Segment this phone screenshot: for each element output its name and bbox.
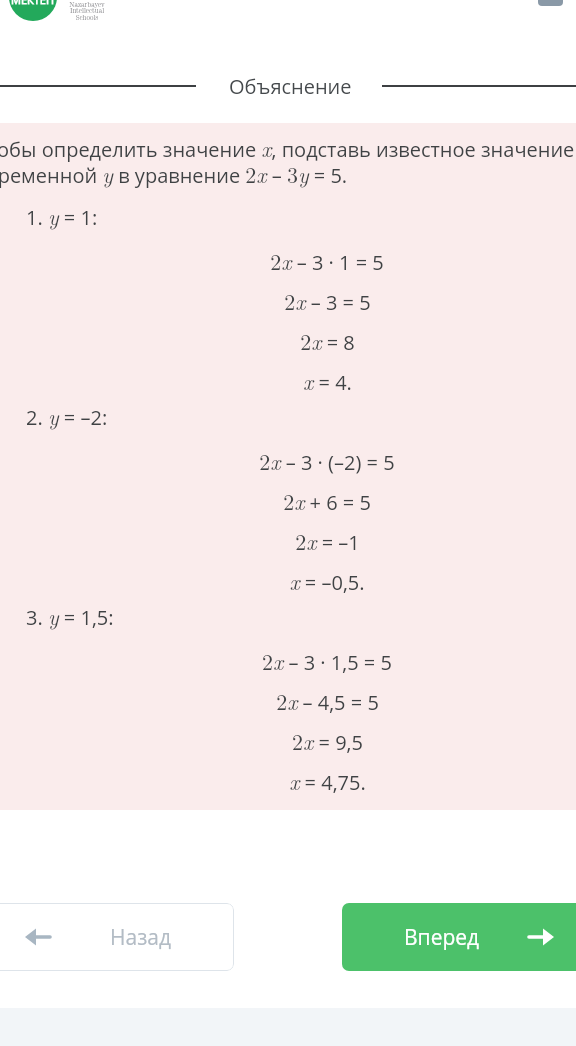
- staticText: 2x – 3 = 5: [284, 285, 371, 316]
- staticText: x = 4.: [303, 365, 352, 396]
- staticText: 2x + 6 = 5: [283, 485, 371, 516]
- staticText: Объяснение: [229, 73, 352, 100]
- staticText: 2x = –1: [295, 525, 360, 556]
- staticText: 2. y = –2:: [26, 400, 108, 431]
- staticText: 2x = 9,5: [292, 725, 363, 756]
- staticText: Чтобы определить значение x, подставь из…: [0, 132, 576, 189]
- staticText: x = –0,5.: [289, 565, 365, 596]
- staticText: 2x = 8: [300, 325, 355, 356]
- staticText: Назад: [110, 923, 172, 952]
- staticText: 2x – 3 · (–2) = 5: [259, 445, 395, 476]
- button[interactable]: Назад: [0, 903, 234, 971]
- staticText: 2x – 3 · 1 = 5: [270, 245, 384, 276]
- button[interactable]: Mektep logo: [9, 0, 57, 21]
- staticText: 1. y = 1:: [26, 200, 98, 231]
- button[interactable]: Calculator: [538, 0, 563, 6]
- staticText: Вперед: [404, 923, 480, 952]
- staticText: 2x – 4,5 = 5: [276, 685, 379, 716]
- staticText: МЕКТЕП: [11, 0, 55, 7]
- staticText: Nazarbayev Intellectual Schools: [69, 0, 105, 22]
- staticText: 2x – 3 · 1,5 = 5: [262, 645, 392, 676]
- button[interactable]: Вперед: [342, 903, 576, 971]
- staticText: 3. y = 1,5:: [26, 600, 114, 631]
- staticText: x = 4,75.: [289, 765, 366, 796]
